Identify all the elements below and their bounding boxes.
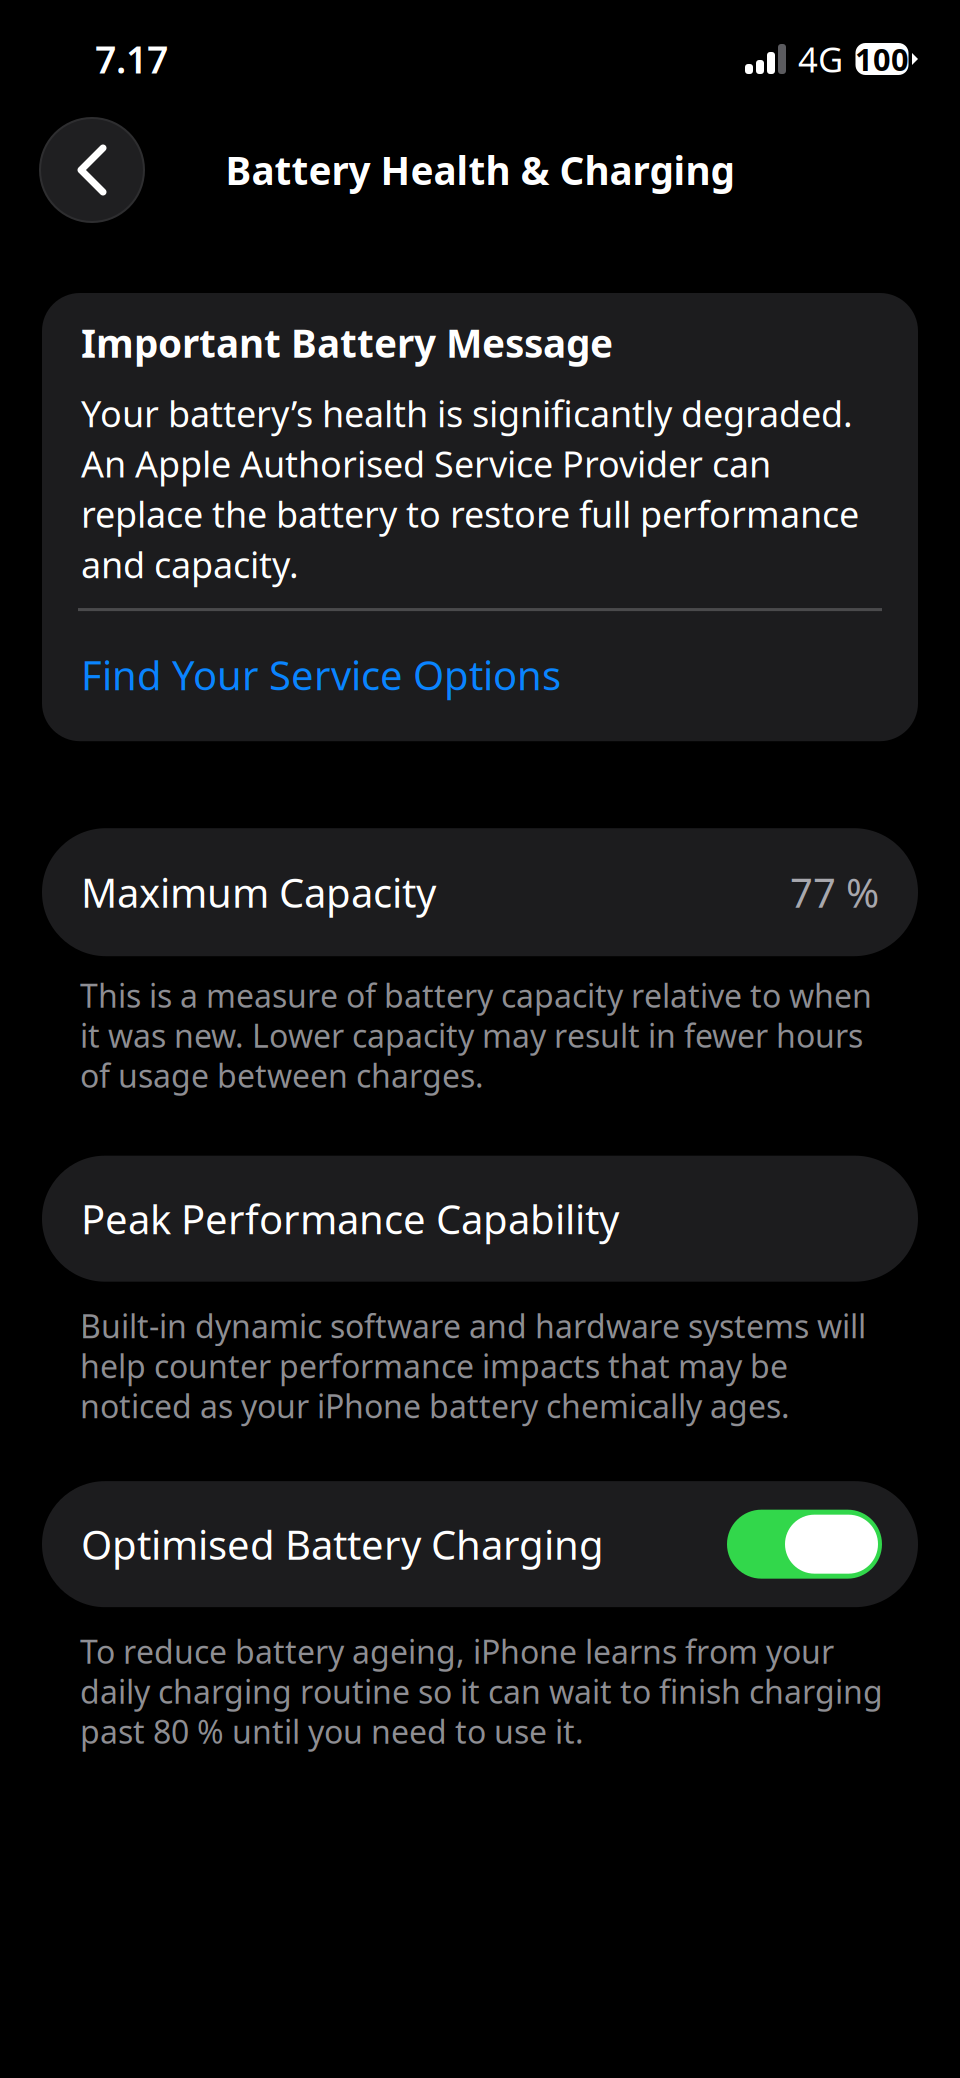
staticText: Optimised Battery Charging	[81, 1518, 604, 1571]
staticText: Important Battery Message	[81, 317, 613, 368]
staticText: 100	[855, 39, 909, 79]
staticText: This is a measure of battery capacity re…	[80, 974, 872, 1097]
staticText: 4G	[798, 36, 843, 82]
staticText: Find Your Service Options	[81, 648, 561, 701]
staticText: To reduce battery ageing, iPhone learns …	[80, 1630, 883, 1753]
button[interactable]: Peak Performance Capability	[0, 1156, 960, 1282]
button[interactable]: Find Your Service Options	[81, 611, 879, 741]
button[interactable]: Back	[40, 118, 144, 222]
button[interactable]: Maximum Capacity	[0, 828, 960, 956]
staticText: Battery Health & Charging	[225, 144, 734, 196]
staticText: Maximum Capacity	[81, 866, 436, 919]
staticText: Built-in dynamic software and hardware s…	[80, 1305, 866, 1427]
button[interactable]: Optimised Battery Charging	[0, 1481, 960, 1607]
staticText: Your battery’s health is significantly d…	[81, 389, 859, 588]
staticText: Peak Performance Capability	[81, 1192, 619, 1245]
staticText: 77 %	[790, 866, 879, 919]
staticText: 7.17	[95, 34, 168, 84]
